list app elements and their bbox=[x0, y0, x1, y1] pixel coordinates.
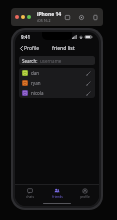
staticText: username bbox=[40, 58, 62, 64]
button[interactable]: Record bbox=[91, 13, 99, 21]
staticText: Profile bbox=[24, 45, 40, 52]
button[interactable]: Edit nicola bbox=[85, 90, 92, 97]
staticText: chats bbox=[26, 195, 34, 199]
staticText: profile bbox=[80, 195, 90, 199]
button[interactable]: chats bbox=[17, 185, 43, 201]
button[interactable]: Search: bbox=[19, 56, 95, 65]
button[interactable]: Settings bbox=[77, 13, 85, 21]
button[interactable]: dan bbox=[19, 68, 95, 78]
button[interactable]: Minimize bbox=[21, 15, 25, 19]
staticText: nicola bbox=[31, 90, 44, 96]
button[interactable]: profile bbox=[72, 185, 98, 201]
staticText: 9:41 bbox=[21, 34, 30, 40]
button[interactable]: Edit dan bbox=[85, 70, 92, 77]
button[interactable]: ryan bbox=[19, 78, 95, 88]
staticText: ryan bbox=[31, 80, 41, 86]
button[interactable]: Edit ryan bbox=[85, 80, 92, 87]
button[interactable]: Zoom bbox=[27, 15, 31, 19]
staticText: friends bbox=[52, 195, 63, 199]
staticText: dan bbox=[31, 70, 40, 76]
button[interactable]: Close bbox=[15, 15, 19, 19]
staticText: iOS 16.2 bbox=[37, 18, 51, 23]
staticText: iPhone 14 bbox=[37, 11, 62, 18]
button[interactable]: friends bbox=[44, 185, 70, 201]
button[interactable]: Home bbox=[63, 13, 71, 21]
staticText: friend list bbox=[52, 45, 75, 52]
staticText: Search: bbox=[22, 58, 38, 64]
button[interactable]: Profile bbox=[19, 44, 41, 53]
button[interactable]: nicola bbox=[19, 88, 95, 98]
